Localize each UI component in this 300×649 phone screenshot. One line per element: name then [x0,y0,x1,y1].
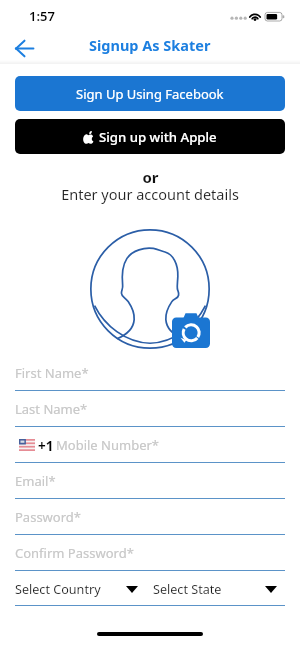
button[interactable]: Change photo [172,313,210,348]
staticText: Select State [153,581,222,598]
staticText: Select Country [15,581,101,598]
button[interactable]: First Name* [15,356,285,391]
button[interactable]: Email* [15,464,285,499]
staticText: Last Name* [15,400,88,418]
button[interactable]: Password* [15,500,285,535]
button[interactable]: Select State [153,573,277,605]
button[interactable]: Back [5,34,43,62]
staticText: Sign up with Apple [99,128,217,146]
staticText: Confirm Password* [15,544,134,562]
button[interactable]: Sign Up Using Facebook [15,76,285,111]
button[interactable]: Confirm Password* [15,536,285,571]
staticText: Enter your account details [61,184,239,204]
staticText: Email* [15,472,56,490]
staticText: Sign Up Using Facebook [76,85,224,103]
button[interactable]: Select Country [15,573,138,605]
staticText: Password* [15,508,81,526]
staticText: 1:57 [29,7,55,25]
staticText: Mobile Number* [56,436,159,454]
button[interactable]: Last Name* [15,392,285,427]
staticText: First Name* [15,364,89,382]
button[interactable]: +1 [15,428,285,463]
staticText: Signup As Skater [89,35,211,55]
button[interactable]: Sign up with Apple [15,119,285,154]
staticText: +1 [38,437,54,455]
staticText: or [142,167,159,187]
